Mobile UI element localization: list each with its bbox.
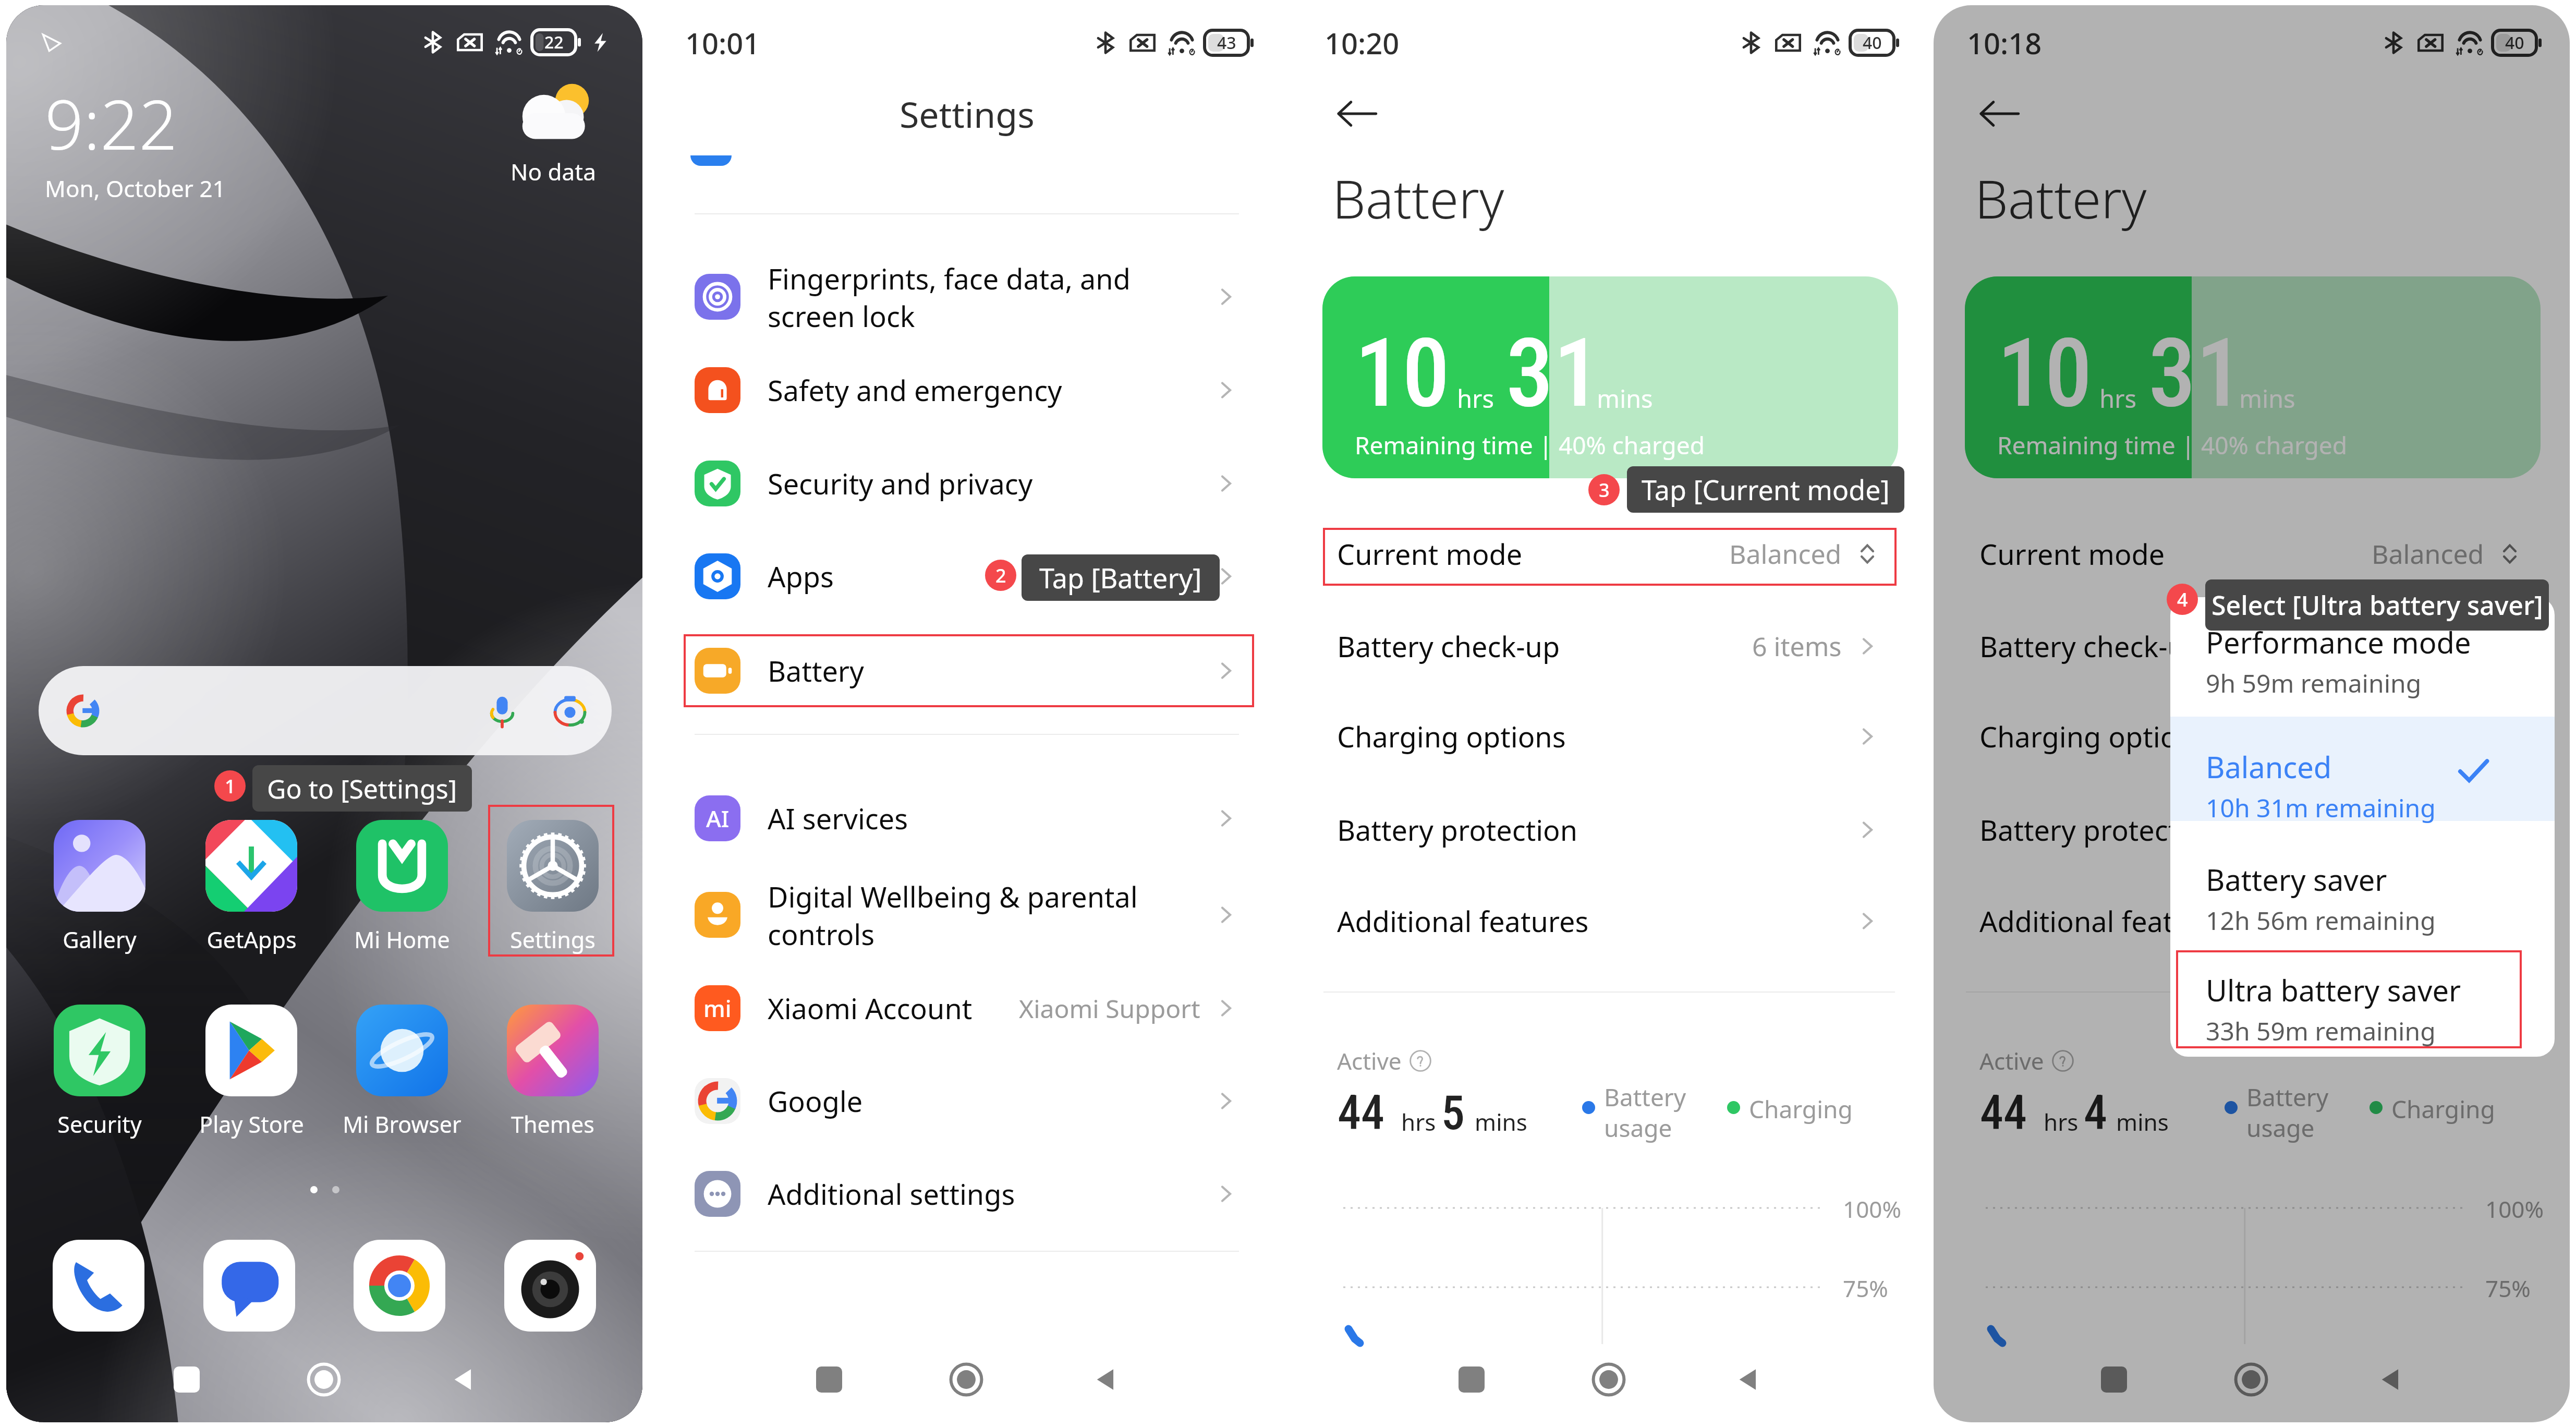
button[interactable] [356, 1005, 448, 1096]
button[interactable]: mi [649, 961, 1285, 1055]
button[interactable]: Back [437, 1353, 489, 1406]
staticText: 33h 59m remaining [2206, 1014, 2436, 1048]
button[interactable]: Performance mode [2170, 597, 2555, 702]
staticText: AI services [768, 799, 1213, 838]
button[interactable]: Fingerprints, face data, and screen lock [649, 250, 1285, 344]
button[interactable]: Current mode [1291, 509, 1927, 599]
staticText: Battery check-up [1979, 627, 2395, 666]
staticText: 31 [1506, 318, 1601, 429]
button[interactable]: Back [1722, 1353, 1774, 1406]
staticText: Battery [1975, 162, 2147, 234]
staticText: Tap [Battery] [1039, 559, 1202, 596]
button[interactable]: Battery check-up [1934, 601, 2570, 692]
staticText: Go to [Settings] [267, 771, 457, 806]
button[interactable]: Home [940, 1353, 992, 1406]
button[interactable] [54, 1005, 145, 1096]
staticText: 10:20 [1325, 23, 1400, 63]
button[interactable]: Recents [2088, 1353, 2140, 1406]
button[interactable]: Recents [161, 1353, 213, 1406]
button[interactable] [205, 820, 297, 912]
button[interactable]: Home [2225, 1353, 2277, 1406]
button[interactable]: Ultra battery saver [2170, 945, 2555, 1049]
staticText: hrs [2044, 1106, 2079, 1138]
staticText: 100% [2485, 1193, 2544, 1225]
button[interactable]: Back [1333, 90, 1381, 138]
staticText: Charging options [1337, 717, 1854, 756]
button[interactable]: Battery check-up [1291, 601, 1927, 692]
button[interactable]: Apps [649, 529, 1285, 623]
button[interactable] [507, 820, 599, 912]
staticText: Fingerprints, face data, and screen lock [768, 259, 1213, 335]
staticText: 6 items [2395, 628, 2484, 664]
button[interactable]: AI [649, 771, 1285, 865]
button[interactable]: Additional settings [649, 1147, 1285, 1241]
staticText: mins [2239, 382, 2295, 415]
staticText: Additional settings [768, 1175, 1213, 1213]
button[interactable]: Charging options [1934, 691, 2570, 782]
staticText: Themes [511, 1109, 594, 1140]
button[interactable]: Home [1583, 1353, 1635, 1406]
staticText: 43 [1217, 31, 1236, 54]
staticText: 100% [1843, 1193, 1902, 1225]
button[interactable]: Current mode [1934, 509, 2570, 599]
button[interactable]: Battery [649, 624, 1285, 718]
button[interactable]: Battery protection [1291, 784, 1927, 875]
staticText: 22 [544, 31, 564, 54]
staticText: 75% [1843, 1273, 1888, 1304]
button[interactable]: Back [1079, 1353, 1132, 1406]
button[interactable]: Safety and emergency [649, 343, 1285, 437]
button[interactable]: Digital Wellbeing & parental controls [649, 868, 1285, 962]
button[interactable] [356, 820, 448, 912]
button[interactable]: Chrome [354, 1240, 445, 1332]
staticText: 9:22 [45, 77, 178, 170]
staticText: Settings [900, 90, 1035, 138]
staticText: Gallery [63, 924, 137, 955]
button[interactable]: Recents [803, 1353, 855, 1406]
staticText: Balanced [1729, 536, 1842, 572]
staticText: No data [511, 156, 596, 187]
staticText: 9h 59m remaining [2206, 666, 2422, 700]
button[interactable]: Messages [203, 1240, 295, 1332]
button[interactable] [507, 1005, 599, 1096]
staticText: 75% [2485, 1273, 2531, 1304]
button[interactable]: Back [1975, 90, 2023, 138]
staticText: mins [2116, 1106, 2169, 1138]
button[interactable]: Security and privacy [649, 437, 1285, 530]
staticText: 1 [225, 773, 236, 799]
staticText: Remaining time | 40% charged [1997, 429, 2348, 462]
staticText: hrs [1457, 382, 1494, 415]
staticText: Balanced [2206, 747, 2332, 787]
staticText: Battery [768, 651, 1213, 690]
button[interactable] [205, 1005, 297, 1096]
staticText: Additional features [1337, 902, 1854, 940]
staticText: Select [Ultra battery saver] [2212, 587, 2543, 623]
staticText: Play Store [199, 1109, 304, 1140]
button[interactable]: Camera [504, 1240, 596, 1332]
staticText: Remaining time | 40% charged [1355, 429, 1705, 462]
button[interactable]: Recents [1445, 1353, 1498, 1406]
staticText: 40 [1863, 31, 1882, 54]
button[interactable]: Battery protection [1934, 784, 2570, 875]
staticText: Security and privacy [768, 464, 1213, 503]
staticText: GetApps [206, 924, 297, 955]
button[interactable] [54, 820, 145, 912]
staticText: 12h 56m remaining [2206, 903, 2436, 937]
staticText: Mi Home [354, 924, 450, 955]
staticText: Battery saver [2206, 860, 2387, 899]
button[interactable]: Home [298, 1353, 350, 1406]
button[interactable]: Additional features [1291, 876, 1927, 966]
button[interactable]: Battery saver [2170, 835, 2555, 939]
staticText: 4 [2084, 1086, 2107, 1141]
button[interactable]: Google [649, 1054, 1285, 1148]
button[interactable]: Back [2364, 1353, 2416, 1406]
button[interactable]: Additional features [1934, 876, 2570, 966]
staticText: 40 [2505, 31, 2524, 54]
staticText: Battery protection [1337, 811, 1854, 849]
button[interactable]: Phone [53, 1240, 144, 1332]
staticText: hrs [2099, 382, 2136, 415]
staticText: Battery [1332, 162, 1504, 234]
staticText: Active [1337, 1045, 1402, 1077]
button[interactable]: Charging options [1291, 691, 1927, 782]
button[interactable]: Balanced [2170, 722, 2555, 826]
button[interactable] [39, 666, 612, 755]
